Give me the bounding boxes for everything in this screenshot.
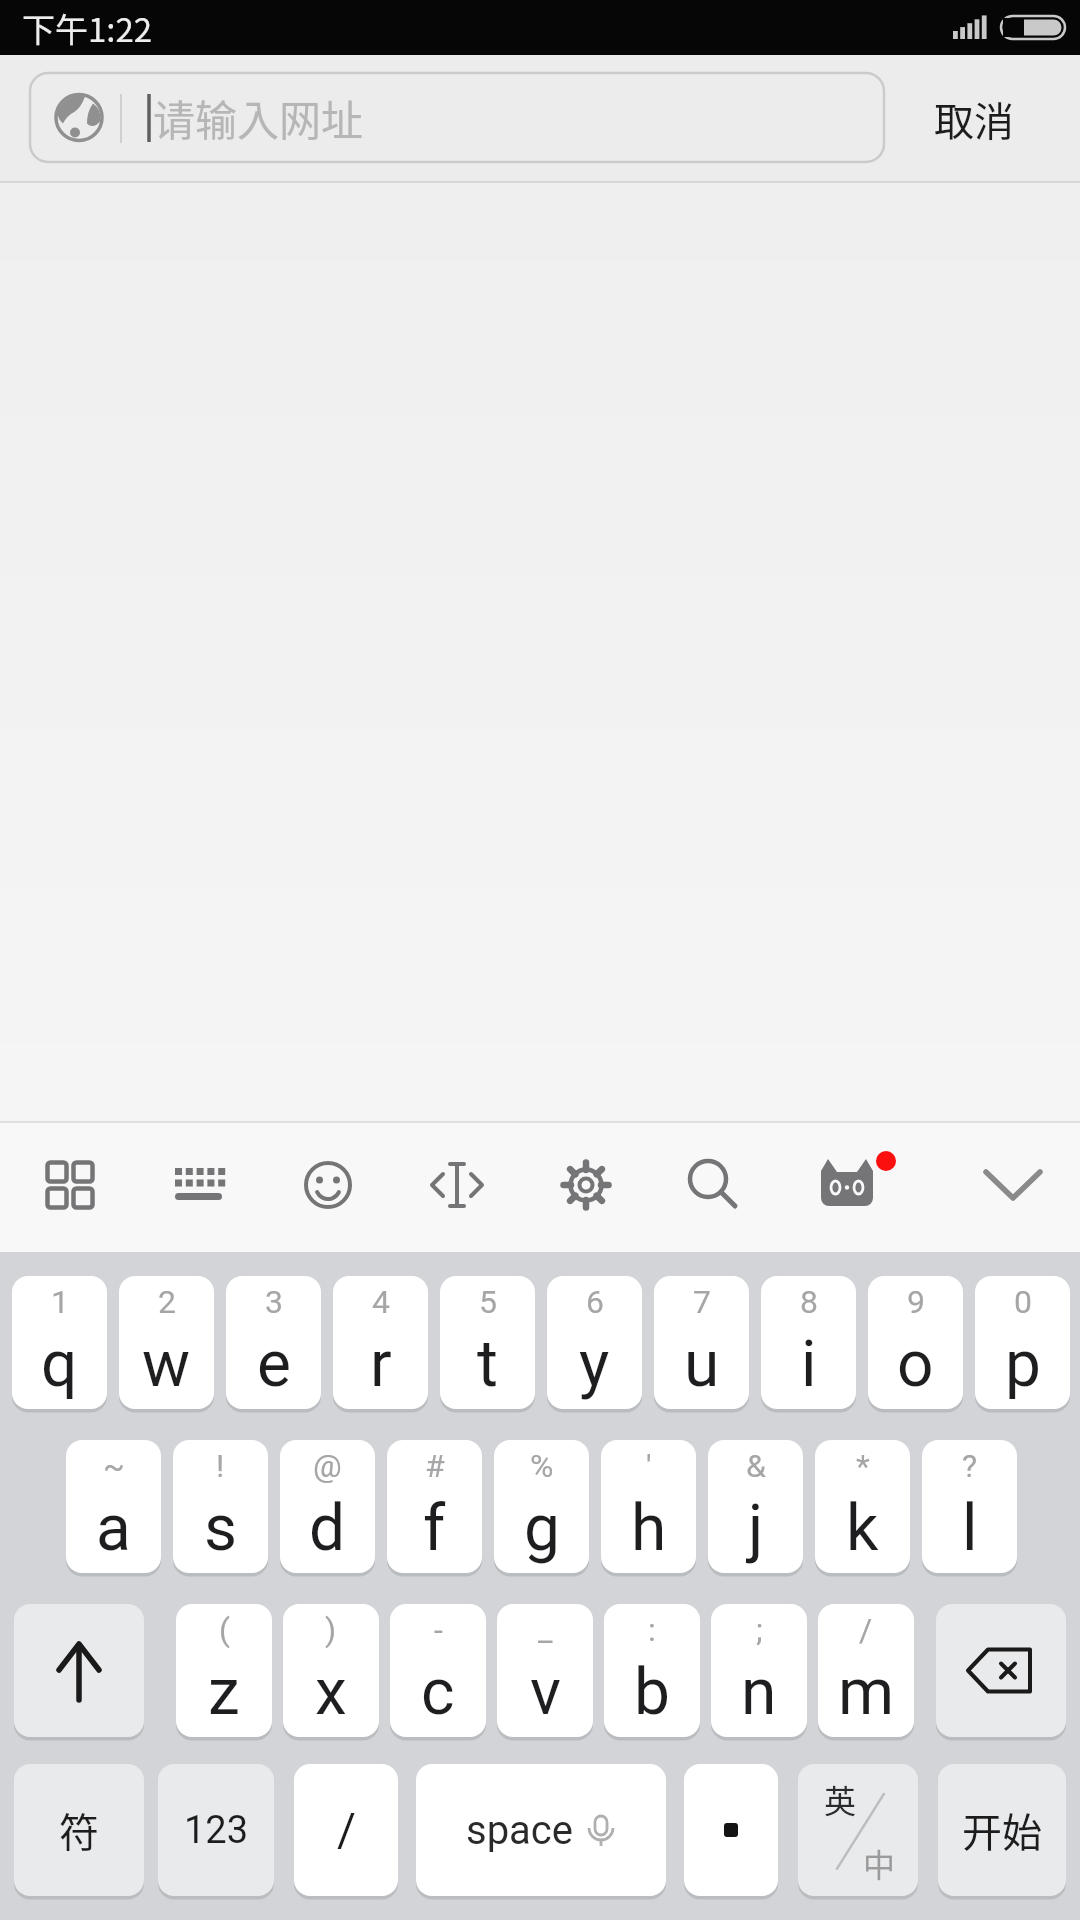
button[interactable]: : <box>604 1604 700 1737</box>
staticText: ) <box>325 1611 337 1649</box>
staticText: & <box>746 1447 766 1485</box>
staticText: r <box>370 1327 392 1402</box>
staticText: z <box>208 1655 240 1730</box>
button[interactable]: ; <box>711 1604 807 1737</box>
staticText: b <box>634 1655 670 1730</box>
staticText: 5 <box>479 1283 497 1321</box>
button[interactable]: * <box>815 1440 910 1573</box>
staticText: p <box>1005 1327 1041 1402</box>
button[interactable]: 123 <box>158 1764 274 1896</box>
staticText: d <box>309 1491 346 1566</box>
button[interactable]: 请输入网址 <box>30 73 884 162</box>
button[interactable] <box>658 1121 766 1252</box>
staticText: l <box>962 1491 978 1566</box>
staticText: 1 <box>51 1283 69 1321</box>
button[interactable]: ( <box>176 1604 272 1737</box>
staticText: 123 <box>184 1808 249 1853</box>
staticText: 3 <box>265 1283 283 1321</box>
button[interactable] <box>532 1121 640 1252</box>
staticText: 9 <box>907 1283 925 1321</box>
staticText: w <box>142 1327 191 1402</box>
button[interactable]: space <box>416 1764 666 1896</box>
button[interactable] <box>684 1764 778 1896</box>
button[interactable]: / <box>294 1764 398 1896</box>
button[interactable]: _ <box>497 1604 593 1737</box>
button[interactable]: 3 <box>226 1276 321 1409</box>
staticText: * <box>856 1447 870 1485</box>
button[interactable]: 符 <box>14 1764 144 1896</box>
button[interactable]: ) <box>283 1604 379 1737</box>
staticText: 2 <box>158 1283 176 1321</box>
button[interactable]: / <box>818 1604 914 1737</box>
staticText: 开始 <box>962 1801 1042 1859</box>
staticText: q <box>41 1327 78 1402</box>
button[interactable]: 6 <box>547 1276 642 1409</box>
button[interactable]: 7 <box>654 1276 749 1409</box>
staticText: i <box>801 1327 817 1402</box>
staticText: n <box>741 1655 777 1730</box>
staticText: a <box>96 1491 131 1566</box>
staticText: - <box>434 1611 443 1649</box>
button[interactable]: 4 <box>333 1276 428 1409</box>
staticText: 符 <box>59 1801 99 1859</box>
button[interactable]: 0 <box>975 1276 1070 1409</box>
button[interactable]: @ <box>280 1440 375 1573</box>
staticText: f <box>423 1491 446 1566</box>
staticText: 下午1:22 <box>22 4 153 52</box>
button[interactable] <box>14 1604 144 1737</box>
staticText: 中 <box>863 1840 896 1886</box>
button[interactable] <box>274 1121 382 1252</box>
staticText: 4 <box>372 1283 390 1321</box>
button[interactable] <box>936 1604 1066 1737</box>
staticText: x <box>315 1655 347 1730</box>
staticText: _ <box>538 1611 553 1649</box>
staticText: ! <box>216 1447 225 1485</box>
staticText: o <box>897 1327 934 1402</box>
staticText: s <box>204 1491 238 1566</box>
button[interactable]: ~ <box>66 1440 161 1573</box>
staticText: u <box>684 1327 720 1402</box>
staticText: h <box>631 1491 667 1566</box>
staticText: : <box>648 1611 656 1649</box>
staticText: / <box>859 1611 873 1649</box>
button[interactable]: ' <box>601 1440 696 1573</box>
button[interactable]: 8 <box>761 1276 856 1409</box>
staticText: ; <box>756 1611 763 1649</box>
staticText: v <box>530 1655 561 1730</box>
button[interactable]: - <box>390 1604 486 1737</box>
staticText: 7 <box>693 1283 711 1321</box>
button[interactable]: # <box>387 1440 482 1573</box>
button[interactable] <box>16 1121 124 1252</box>
button[interactable] <box>959 1121 1067 1252</box>
button[interactable]: ? <box>922 1440 1017 1573</box>
staticText: t <box>477 1327 498 1402</box>
staticText: space <box>466 1807 574 1854</box>
staticText: ? <box>962 1447 978 1485</box>
button[interactable] <box>145 1121 253 1252</box>
button[interactable]: % <box>494 1440 589 1573</box>
staticText: ' <box>646 1447 652 1485</box>
button[interactable]: 9 <box>868 1276 963 1409</box>
staticText: c <box>421 1655 455 1730</box>
staticText: @ <box>313 1447 342 1485</box>
staticText: k <box>846 1491 879 1566</box>
button[interactable]: ! <box>173 1440 268 1573</box>
button[interactable]: 取消 <box>934 90 1014 148</box>
staticText: 英 <box>824 1776 857 1822</box>
button[interactable] <box>793 1121 901 1252</box>
staticText: 请输入网址 <box>153 87 364 148</box>
staticText: ( <box>219 1611 230 1649</box>
staticText: ~ <box>103 1447 125 1485</box>
staticText: y <box>579 1327 610 1402</box>
staticText: 8 <box>800 1283 818 1321</box>
staticText: # <box>425 1447 445 1485</box>
button[interactable]: & <box>708 1440 803 1573</box>
staticText: j <box>748 1491 764 1566</box>
staticText: g <box>524 1491 560 1566</box>
button[interactable]: 2 <box>119 1276 214 1409</box>
button[interactable]: 5 <box>440 1276 535 1409</box>
button[interactable] <box>403 1121 511 1252</box>
button[interactable]: 1 <box>12 1276 107 1409</box>
button[interactable]: 英 <box>798 1764 918 1896</box>
button[interactable]: 开始 <box>938 1764 1066 1896</box>
